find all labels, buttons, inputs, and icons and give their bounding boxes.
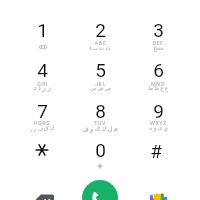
staticText: م ل ك ك و ف bbox=[82, 125, 118, 132]
staticText: 8 bbox=[95, 100, 106, 122]
staticText: ز ر ذ د bbox=[33, 84, 51, 92]
staticText: 1 bbox=[37, 19, 48, 41]
staticText: خحج bbox=[153, 45, 164, 51]
staticText: ث ت ب ا bbox=[89, 45, 111, 51]
staticText: JKL bbox=[95, 81, 106, 87]
button[interactable]: Backspace bbox=[34, 194, 54, 200]
staticText: # bbox=[150, 140, 162, 162]
button[interactable]: Call bbox=[82, 180, 118, 200]
staticText: 5 bbox=[95, 59, 106, 81]
staticText: 3 bbox=[153, 19, 164, 41]
button[interactable]: 3 bbox=[129, 11, 187, 51]
button[interactable]: Google apps bbox=[150, 192, 167, 200]
button[interactable]: 8 bbox=[71, 92, 129, 132]
button[interactable]: 0 plus bbox=[71, 131, 129, 171]
staticText: 4 bbox=[37, 59, 48, 81]
button[interactable]: 5 bbox=[71, 51, 129, 91]
staticText: ك ق ف ز ر bbox=[30, 125, 54, 131]
staticText: ص ش س bbox=[90, 85, 111, 91]
staticText: DEF bbox=[152, 40, 164, 46]
button[interactable]: pound bbox=[129, 131, 187, 171]
staticText: TUV bbox=[94, 120, 106, 126]
staticText: ي ى و ه bbox=[149, 125, 168, 132]
button[interactable]: 4 bbox=[13, 51, 71, 91]
staticText: 9 bbox=[153, 100, 164, 122]
staticText: 6 bbox=[153, 59, 164, 81]
button[interactable]: 2 bbox=[71, 11, 129, 51]
button[interactable]: 1 bbox=[13, 11, 71, 51]
staticText: GHI bbox=[37, 81, 48, 87]
staticText: 2 bbox=[95, 19, 106, 41]
button[interactable]: star bbox=[13, 131, 71, 171]
button[interactable]: 7 bbox=[13, 92, 71, 132]
staticText: 0 bbox=[95, 139, 106, 161]
staticText: PQRS bbox=[34, 120, 50, 126]
button[interactable]: 9 bbox=[129, 92, 187, 132]
staticText: WXYZ bbox=[150, 120, 167, 126]
staticText: 7 bbox=[37, 100, 48, 122]
button[interactable]: 6 bbox=[129, 51, 187, 91]
staticText: غ ع ظ ط bbox=[148, 85, 168, 91]
staticText: ABC bbox=[94, 40, 107, 46]
staticText: MNO bbox=[151, 81, 165, 87]
